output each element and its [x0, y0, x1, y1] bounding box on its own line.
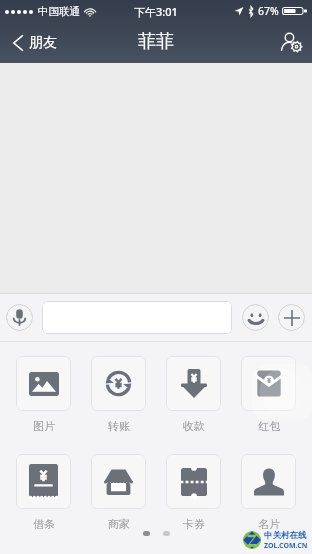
button[interactable]: 卡券 [166, 454, 221, 531]
staticText: 借条 [33, 517, 55, 531]
button[interactable]: 名片 [241, 454, 296, 531]
staticText: 菲菲 [138, 30, 174, 53]
staticText: 中国联通 [38, 5, 80, 18]
button[interactable]: Voice input [6, 304, 33, 331]
staticText: 下午3:01 [134, 4, 178, 19]
staticText: 收款 [183, 419, 205, 433]
button[interactable]: 收款 [166, 356, 221, 433]
staticText: 朋友 [29, 34, 57, 52]
button[interactable]: 商家 [91, 454, 146, 531]
button[interactable]: 借条 [16, 454, 71, 531]
staticText: 图片 [33, 419, 55, 433]
button[interactable]: Contact settings [271, 22, 312, 63]
button[interactable]: Emoji [242, 304, 269, 331]
staticText: 转账 [108, 419, 130, 433]
staticText: 中关村在线 [264, 530, 307, 541]
button[interactable]: 红包 [241, 356, 296, 433]
staticText: 红包 [258, 419, 280, 433]
button[interactable]: 朋友 [0, 22, 69, 63]
button[interactable]: 转账 [91, 356, 146, 433]
button[interactable]: 图片 [16, 356, 71, 433]
staticText: 商家 [108, 517, 130, 531]
button[interactable]: More [278, 304, 305, 331]
staticText: 67% [258, 4, 279, 18]
staticText: 名片 [258, 517, 280, 531]
staticText: 卡券 [183, 517, 205, 531]
button[interactable] [42, 301, 232, 334]
staticText: ZOL.COM.CN [264, 541, 308, 550]
